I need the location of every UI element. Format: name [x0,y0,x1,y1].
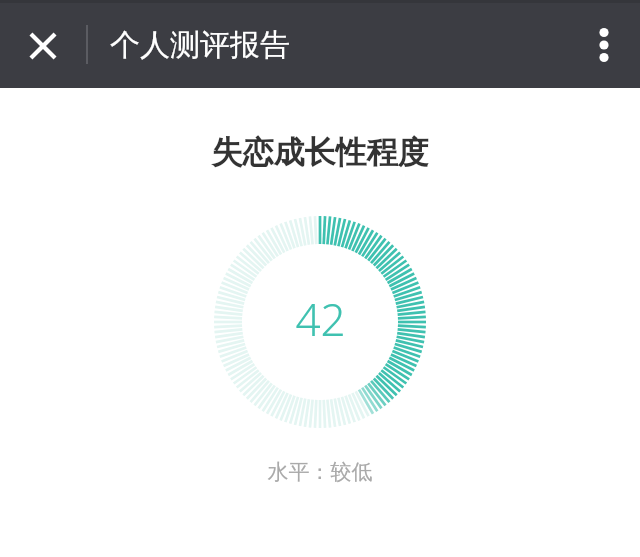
button[interactable]: Close [0,0,86,88]
staticText: 失恋成长性程度 [0,133,640,172]
button[interactable]: More options [568,0,640,88]
staticText: 个人测评报告 [110,26,290,64]
staticText: 水平：较低 [0,459,640,485]
staticText: 42 [295,289,346,349]
